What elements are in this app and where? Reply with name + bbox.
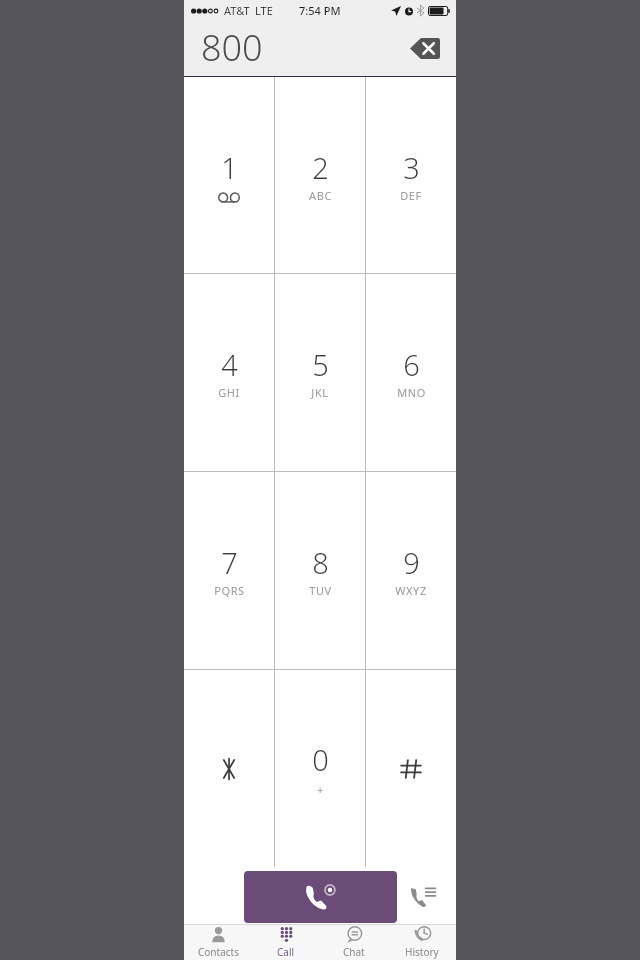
button[interactable]: 0 xyxy=(275,670,365,867)
button[interactable]: 8 xyxy=(275,472,365,669)
button[interactable]: 1 xyxy=(184,77,274,273)
staticText: Call xyxy=(277,945,295,959)
button[interactable]: 5 xyxy=(275,274,365,471)
staticText: GHI xyxy=(218,385,240,400)
staticText: MNO xyxy=(397,385,426,400)
button[interactable] xyxy=(184,670,274,867)
button[interactable]: 6 xyxy=(366,274,456,471)
staticText: AT&T xyxy=(224,3,250,18)
staticText: PQRS xyxy=(214,583,245,598)
staticText: 8 xyxy=(312,543,329,582)
staticText: WXYZ xyxy=(395,583,427,598)
staticText: 3 xyxy=(403,148,420,187)
staticText: 9 xyxy=(403,543,420,582)
staticText: Chat xyxy=(343,945,365,959)
button[interactable]: History xyxy=(388,925,456,960)
button[interactable]: 2 xyxy=(275,77,365,273)
staticText: History xyxy=(405,945,439,959)
button[interactable]: Call options xyxy=(402,876,444,918)
staticText: 800 xyxy=(201,23,263,72)
button[interactable]: 3 xyxy=(366,77,456,273)
staticText: 4 xyxy=(221,345,238,384)
button[interactable]: Call xyxy=(244,871,397,923)
staticText: 0 xyxy=(312,740,329,779)
staticText: 7:54 PM xyxy=(299,3,341,18)
staticText: JKL xyxy=(311,385,329,400)
staticText: 5 xyxy=(312,345,329,384)
button[interactable]: Backspace xyxy=(408,33,442,63)
button[interactable] xyxy=(366,670,456,867)
staticText: 1 xyxy=(221,148,238,187)
staticText: DEF xyxy=(400,188,422,203)
staticText: 7 xyxy=(221,543,238,582)
button[interactable]: Chat xyxy=(320,925,388,960)
button[interactable]: 7 xyxy=(184,472,274,669)
button[interactable]: Call xyxy=(252,925,320,960)
staticText: Contacts xyxy=(198,945,239,959)
staticText: ABC xyxy=(309,188,332,203)
button[interactable]: 4 xyxy=(184,274,274,471)
button[interactable]: Contacts xyxy=(184,925,252,960)
staticText: + xyxy=(317,782,324,797)
staticText: TUV xyxy=(309,583,332,598)
button[interactable]: 9 xyxy=(366,472,456,669)
staticText: LTE xyxy=(255,3,273,18)
staticText: 2 xyxy=(312,148,329,187)
staticText: 6 xyxy=(403,345,420,384)
